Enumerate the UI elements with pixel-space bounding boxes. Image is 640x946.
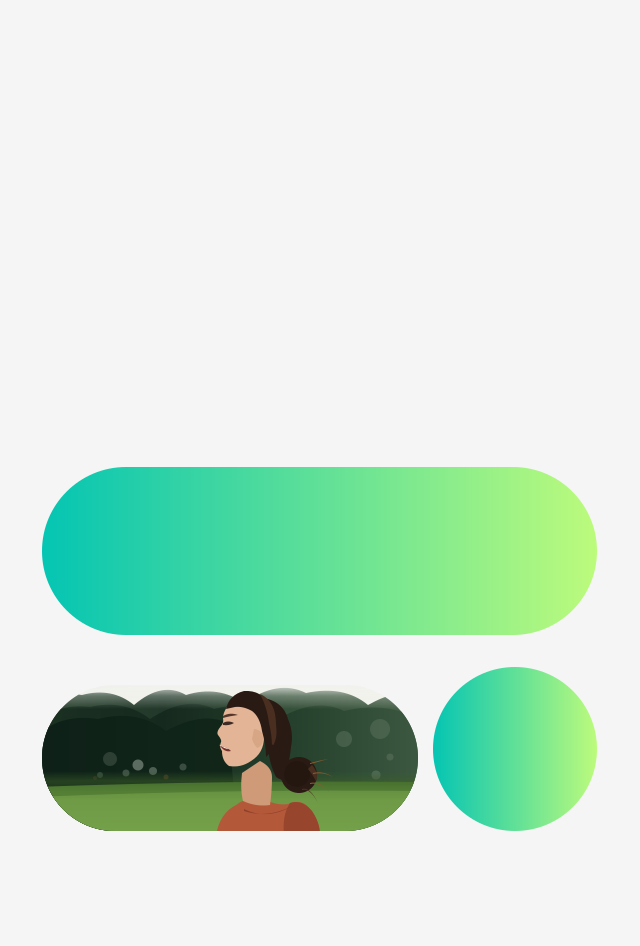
button[interactable]: More (433, 667, 597, 831)
button[interactable]: Open photo (42, 685, 418, 831)
button[interactable]: Continue (42, 467, 597, 635)
